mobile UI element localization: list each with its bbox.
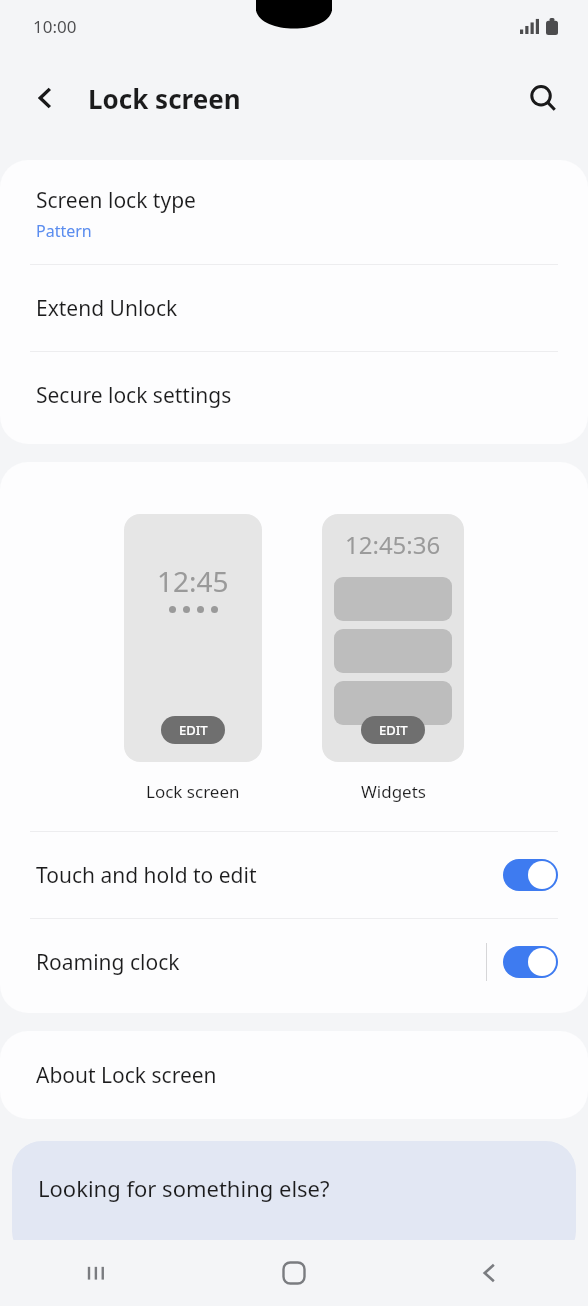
- staticText: Screen lock type: [36, 186, 196, 215]
- staticText: Secure lock settings: [36, 381, 232, 410]
- button[interactable]: About Lock screen: [0, 1031, 588, 1119]
- button[interactable]: [503, 946, 558, 978]
- button[interactable]: 12:45: [124, 514, 262, 803]
- staticText: Looking for something else?: [38, 1173, 330, 1203]
- staticText: 12:45:36: [345, 528, 441, 561]
- button[interactable]: Home: [263, 1242, 325, 1304]
- button[interactable]: EDIT: [361, 716, 425, 744]
- staticText: Roaming clock: [36, 948, 486, 977]
- staticText: Lock screen: [146, 780, 240, 803]
- staticText: Lock screen: [88, 81, 241, 116]
- staticText: 10:00: [33, 15, 77, 38]
- button[interactable]: Secure lock settings: [0, 352, 588, 438]
- staticText: About Lock screen: [36, 1061, 217, 1090]
- button[interactable]: Extend Unlock: [0, 265, 588, 351]
- button[interactable]: 12:45:36: [322, 514, 464, 803]
- staticText: Pattern: [36, 220, 92, 242]
- staticText: Touch and hold to edit: [36, 861, 503, 890]
- button[interactable]: Touch and hold to edit: [0, 832, 588, 918]
- button[interactable]: Roaming clock: [0, 919, 588, 1005]
- button[interactable]: Back: [459, 1242, 521, 1304]
- button[interactable]: Search: [516, 71, 570, 125]
- button[interactable]: EDIT: [161, 716, 225, 744]
- staticText: 12:45: [157, 562, 229, 600]
- button[interactable]: Recents: [67, 1242, 129, 1304]
- button[interactable]: Looking for something else?: [12, 1141, 576, 1261]
- staticText: Widgets: [361, 780, 426, 803]
- button[interactable]: Back: [20, 72, 72, 124]
- staticText: EDIT: [379, 721, 408, 739]
- staticText: EDIT: [179, 721, 208, 739]
- button[interactable]: [503, 859, 558, 891]
- button[interactable]: Screen lock type: [0, 160, 588, 264]
- staticText: Extend Unlock: [36, 294, 178, 323]
